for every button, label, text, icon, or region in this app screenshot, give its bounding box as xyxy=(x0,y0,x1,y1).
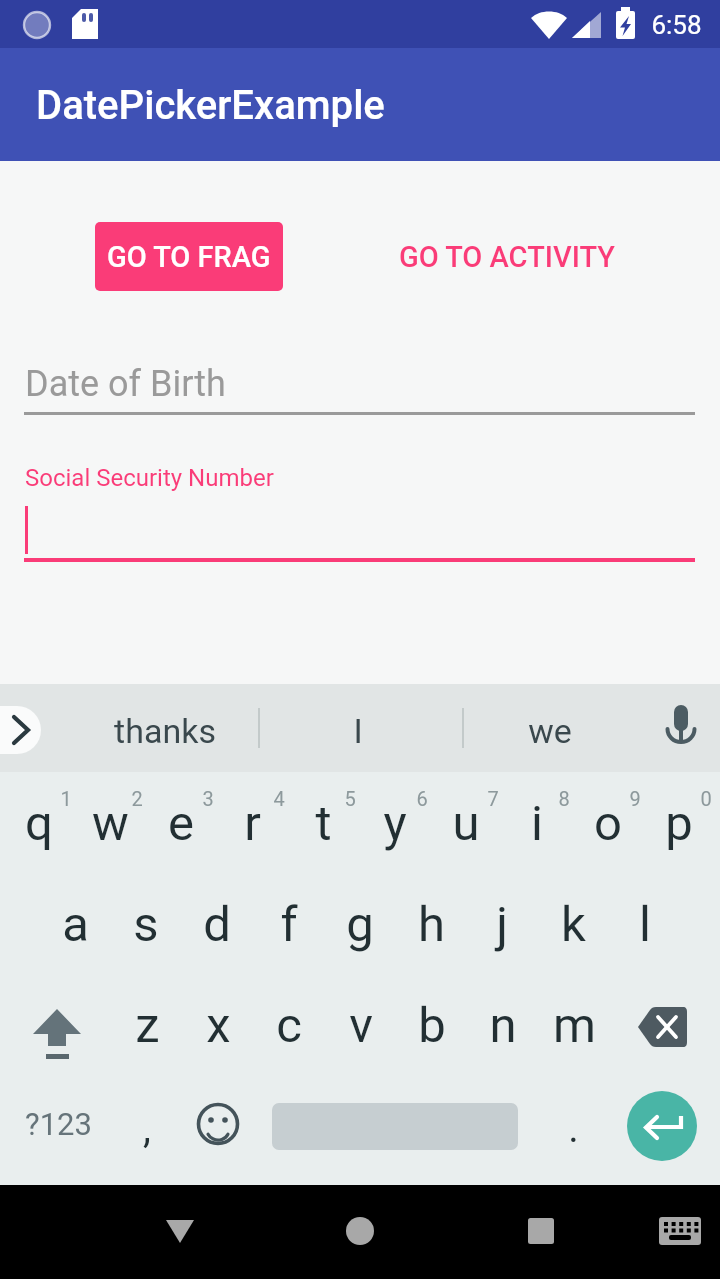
button[interactable]: Backspace xyxy=(630,1000,698,1056)
button[interactable]: d xyxy=(181,882,253,966)
staticText: m xyxy=(553,997,596,1054)
staticText: s xyxy=(133,896,159,953)
staticText: 4 xyxy=(273,787,285,810)
staticText: l xyxy=(639,896,651,953)
staticText: DatePickerExample xyxy=(36,82,385,129)
staticText: 6:58 xyxy=(651,10,702,40)
staticText: Date of Birth xyxy=(25,363,226,405)
staticText: c xyxy=(276,997,302,1054)
staticText: . xyxy=(568,1105,579,1152)
staticText: 8 xyxy=(558,787,570,810)
button[interactable]: Emoji xyxy=(184,1090,252,1158)
button[interactable]: Back xyxy=(140,1201,220,1263)
button[interactable]: s xyxy=(110,882,182,966)
staticText: 3 xyxy=(202,787,214,810)
staticText: x xyxy=(206,997,231,1054)
staticText: v xyxy=(349,997,373,1054)
button[interactable]: Voice input xyxy=(651,700,711,760)
button[interactable]: b xyxy=(396,983,468,1067)
staticText: f xyxy=(280,896,298,953)
button[interactable]: t xyxy=(287,781,359,865)
staticText: k xyxy=(561,896,586,953)
staticText: u xyxy=(452,795,480,852)
staticText: i xyxy=(531,795,543,852)
button[interactable]: g xyxy=(324,882,396,966)
button[interactable]: l xyxy=(609,882,681,966)
button[interactable]: q xyxy=(3,781,75,865)
button[interactable]: Change keyboard xyxy=(645,1201,717,1263)
staticText: g xyxy=(346,896,374,953)
button[interactable]: I xyxy=(268,700,448,762)
button[interactable]: v xyxy=(325,983,397,1067)
button[interactable]: . xyxy=(541,1093,605,1163)
button[interactable]: ?123 xyxy=(13,1089,103,1159)
button[interactable]: e xyxy=(145,781,217,865)
staticText: GO TO ACTIVITY xyxy=(399,240,615,274)
staticText: GO TO FRAG xyxy=(107,240,271,274)
button[interactable] xyxy=(24,500,696,562)
staticText: t xyxy=(315,795,332,852)
button[interactable]: we xyxy=(460,700,640,762)
staticText: z xyxy=(135,997,160,1054)
button[interactable]: Shift xyxy=(25,1004,89,1064)
button[interactable]: z xyxy=(111,983,183,1067)
button[interactable]: thanks xyxy=(75,700,255,762)
staticText: , xyxy=(143,1105,151,1152)
button[interactable]: w xyxy=(74,781,146,865)
button[interactable]: k xyxy=(537,882,609,966)
button[interactable]: Enter xyxy=(627,1091,697,1161)
button[interactable]: m xyxy=(538,983,610,1067)
staticText: b xyxy=(418,997,446,1054)
button[interactable]: Date of Birth xyxy=(24,352,696,416)
button[interactable]: h xyxy=(395,882,467,966)
staticText: I xyxy=(353,711,363,751)
button[interactable]: i xyxy=(501,781,573,865)
button[interactable]: u xyxy=(430,781,502,865)
staticText: d xyxy=(203,896,231,953)
button[interactable]: y xyxy=(359,781,431,865)
button[interactable]: j xyxy=(466,882,538,966)
staticText: 9 xyxy=(629,787,641,810)
staticText: y xyxy=(383,795,407,852)
staticText: we xyxy=(528,711,572,751)
staticText: p xyxy=(665,795,693,852)
staticText: thanks xyxy=(114,711,216,751)
staticText: 7 xyxy=(487,787,499,810)
staticText: 5 xyxy=(344,787,356,810)
button[interactable]: p xyxy=(643,781,715,865)
staticText: q xyxy=(25,795,53,852)
button[interactable]: Home xyxy=(320,1201,400,1263)
staticText: 2 xyxy=(131,787,143,810)
staticText: j xyxy=(496,896,508,953)
staticText: Social Security Number xyxy=(25,464,274,492)
staticText: n xyxy=(489,997,517,1054)
button[interactable]: c xyxy=(253,983,325,1067)
staticText: h xyxy=(418,896,445,953)
button[interactable]: r xyxy=(216,781,288,865)
staticText: e xyxy=(168,795,194,852)
staticText: w xyxy=(92,795,129,852)
staticText: 1 xyxy=(60,787,72,810)
button[interactable]: o xyxy=(572,781,644,865)
button[interactable]: Recent apps xyxy=(500,1201,580,1263)
button[interactable]: GO TO FRAG xyxy=(95,222,283,291)
button[interactable]: a xyxy=(39,882,111,966)
staticText: r xyxy=(244,795,261,852)
button[interactable]: f xyxy=(253,882,325,966)
staticText: a xyxy=(62,896,89,953)
staticText: 6 xyxy=(416,787,428,810)
staticText: ?123 xyxy=(25,1106,92,1142)
staticText: o xyxy=(594,795,622,852)
button[interactable]: More suggestions xyxy=(0,706,41,754)
button[interactable]: x xyxy=(182,983,254,1067)
button[interactable]: n xyxy=(467,983,539,1067)
staticText: 0 xyxy=(700,787,712,810)
button[interactable]: GO TO ACTIVITY xyxy=(387,222,627,291)
button[interactable]: , xyxy=(112,1093,182,1163)
